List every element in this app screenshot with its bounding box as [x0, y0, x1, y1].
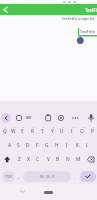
staticText: EN · DE · PL — [40, 175, 55, 179]
button[interactable]: GIF — [26, 116, 32, 120]
staticText: 8 — [73, 126, 75, 129]
button[interactable]: Z — [15, 153, 24, 166]
button[interactable]: , — [16, 171, 22, 182]
staticText: 2 — [14, 126, 16, 129]
staticText: L — [86, 142, 89, 149]
button[interactable]: K — [72, 139, 82, 152]
button[interactable] — [0, 184, 97, 200]
button[interactable] — [0, 111, 97, 125]
button[interactable]: G — [42, 139, 52, 152]
staticText: H — [55, 142, 59, 149]
button[interactable] — [0, 153, 14, 166]
button[interactable]: J — [62, 139, 72, 152]
staticText: Q — [3, 128, 7, 135]
button[interactable]: Q — [0, 125, 9, 138]
button[interactable]: E — [18, 125, 27, 138]
staticText: I — [71, 128, 73, 135]
staticText: G — [45, 142, 49, 149]
button[interactable]: ?123 — [2, 171, 15, 182]
staticText: , — [18, 174, 20, 180]
button[interactable]: H — [52, 139, 62, 152]
button[interactable]: D — [23, 139, 32, 152]
staticText: 9 — [83, 126, 85, 129]
staticText: Z — [18, 156, 21, 163]
button[interactable]: I — [67, 125, 77, 138]
staticText: S — [17, 142, 20, 149]
button[interactable]: T — [37, 125, 47, 138]
staticText: TestFie — [85, 7, 97, 13]
button[interactable]: U — [57, 125, 67, 138]
staticText: A — [8, 142, 12, 149]
button[interactable]: F — [32, 139, 42, 152]
button[interactable] — [0, 4, 97, 15]
staticText: J — [66, 142, 68, 149]
button[interactable]: P — [87, 125, 97, 138]
staticText: E — [21, 128, 24, 135]
staticText: M — [76, 156, 81, 163]
staticText: V — [47, 156, 50, 163]
staticText: . — [74, 174, 76, 180]
staticText: K — [76, 142, 79, 149]
button[interactable]: Y — [47, 125, 57, 138]
button[interactable]: . — [72, 171, 78, 182]
staticText: D — [26, 142, 30, 149]
button[interactable]: L — [82, 139, 92, 152]
staticText: R — [31, 128, 34, 135]
button[interactable]: B — [53, 153, 63, 166]
button[interactable]: W — [9, 125, 18, 138]
staticText: 1 — [5, 126, 7, 129]
button[interactable] — [83, 153, 97, 166]
button[interactable]: C — [33, 153, 43, 166]
staticText: X — [27, 156, 30, 163]
staticText: TestField is a single line — [62, 17, 95, 21]
button[interactable]: R — [27, 125, 37, 138]
button[interactable] — [1, 113, 11, 123]
button[interactable]: O — [77, 125, 87, 138]
staticText: 7 — [63, 126, 65, 129]
button[interactable]: EN · DE · PL — [23, 171, 71, 182]
button[interactable] — [80, 171, 96, 182]
staticText: TestField — [80, 29, 95, 34]
staticText: B — [56, 156, 60, 163]
button[interactable]: X — [24, 153, 33, 166]
staticText: P — [91, 128, 94, 135]
staticText: T — [41, 128, 44, 135]
staticText: N — [66, 156, 70, 163]
staticText: 4 — [33, 126, 35, 129]
button[interactable]: A — [5, 139, 14, 152]
button[interactable]: V — [43, 153, 53, 166]
staticText: O — [80, 128, 84, 135]
staticText: ?123 — [5, 175, 12, 179]
staticText: 5 — [43, 126, 45, 129]
staticText: 6 — [53, 126, 55, 129]
button[interactable]: M — [73, 153, 83, 166]
staticText: W — [11, 128, 16, 135]
staticText: Y — [51, 128, 54, 135]
staticText: C — [36, 156, 40, 163]
button[interactable]: N — [63, 153, 73, 166]
staticText: 0 — [93, 126, 95, 129]
button[interactable]: S — [14, 139, 23, 152]
staticText: U — [60, 128, 64, 135]
staticText: 3 — [23, 126, 25, 129]
staticText: F — [36, 142, 39, 149]
